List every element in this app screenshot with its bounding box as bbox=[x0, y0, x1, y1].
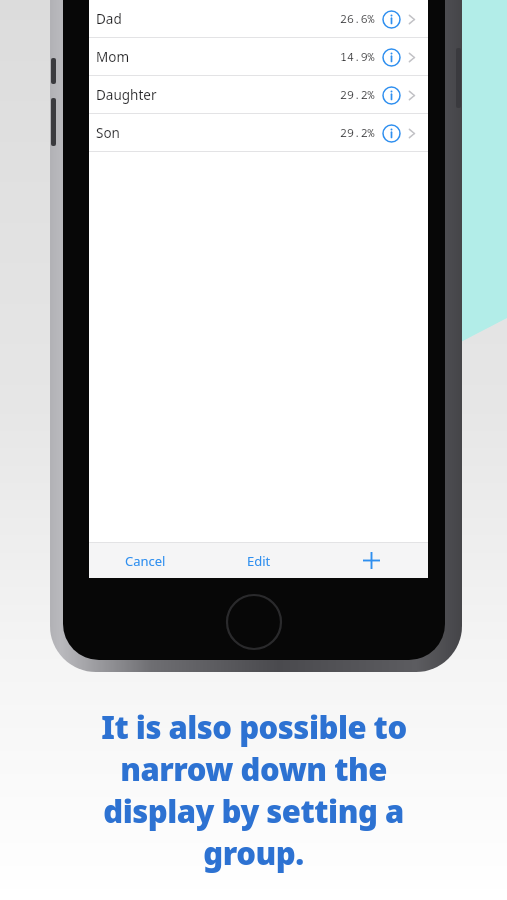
button[interactable]: Information bbox=[382, 48, 401, 67]
staticText: Son bbox=[96, 124, 120, 142]
button[interactable]: Information bbox=[382, 124, 401, 143]
button[interactable]: Mom bbox=[89, 38, 428, 76]
staticText: Dad bbox=[96, 10, 122, 28]
button[interactable]: Information bbox=[382, 86, 401, 105]
button[interactable]: Edit bbox=[202, 543, 315, 578]
button[interactable]: Cancel bbox=[89, 543, 202, 578]
button[interactable]: Dad bbox=[89, 0, 428, 38]
staticText: group. bbox=[203, 832, 304, 874]
staticText: Edit bbox=[247, 552, 271, 570]
button[interactable]: Son bbox=[89, 114, 428, 152]
staticText: display by setting a bbox=[103, 790, 404, 832]
button[interactable]: Information bbox=[382, 10, 401, 29]
staticText: narrow down the bbox=[120, 748, 387, 790]
staticText: 26.6% bbox=[340, 11, 375, 27]
staticText: 29.2% bbox=[340, 87, 375, 103]
staticText: Cancel bbox=[125, 552, 166, 570]
staticText: Daughter bbox=[96, 86, 157, 104]
staticText: Mom bbox=[96, 48, 130, 66]
staticText: 29.2% bbox=[340, 125, 375, 141]
button[interactable]: Add bbox=[315, 543, 428, 578]
staticText: It is also possible to bbox=[101, 706, 407, 748]
button[interactable]: Daughter bbox=[89, 76, 428, 114]
staticText: 14.9% bbox=[340, 49, 375, 65]
